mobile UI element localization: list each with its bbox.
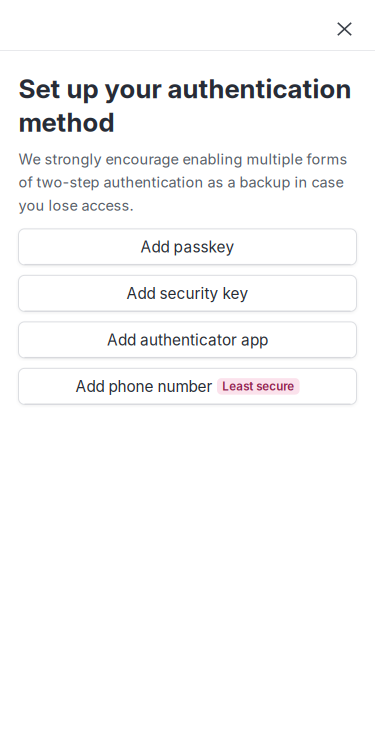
staticText: Set up your authentication method — [18, 73, 351, 138]
staticText: Add phone number — [75, 377, 212, 396]
staticText: Least secure — [222, 379, 294, 393]
button[interactable]: Add security key — [18, 275, 356, 311]
staticText: Add passkey — [140, 238, 234, 256]
button[interactable]: Add phone number — [18, 368, 356, 404]
button[interactable]: Add authenticator app — [18, 322, 356, 358]
button[interactable]: Close — [322, 7, 366, 51]
staticText: Add security key — [126, 284, 248, 303]
button[interactable]: Add passkey — [18, 229, 356, 265]
staticText: Add authenticator app — [107, 331, 268, 349]
staticText: We strongly encourage enabling multiple … — [18, 150, 347, 214]
